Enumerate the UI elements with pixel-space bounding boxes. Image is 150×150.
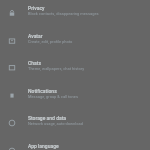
staticText: Create, edit, profile photo	[28, 39, 73, 44]
staticText: Block contacts, disappearing messages	[28, 11, 99, 16]
staticText: Notifications	[28, 88, 57, 94]
button[interactable]: App language	[0, 138, 150, 150]
button[interactable]: Avatar	[0, 28, 150, 56]
button[interactable]: Storage and data	[0, 110, 150, 138]
staticText: Chats	[28, 60, 41, 66]
staticText: App language	[28, 143, 59, 149]
button[interactable]: Chats	[0, 55, 150, 83]
staticText: Theme, wallpapers, chat history	[28, 66, 85, 71]
staticText: Message, group & call tones	[28, 94, 78, 99]
button[interactable]: Notifications	[0, 83, 150, 111]
staticText: Avatar	[28, 33, 43, 39]
staticText: Privacy	[28, 5, 45, 11]
staticText: Storage and data	[28, 115, 67, 121]
staticText: Network usage, auto-download	[28, 121, 84, 126]
button[interactable]: Privacy	[0, 0, 150, 28]
